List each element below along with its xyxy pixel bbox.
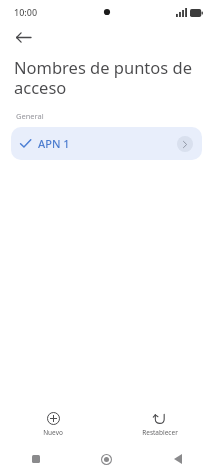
- staticText: 10:00: [14, 6, 38, 18]
- button[interactable]: Recents: [0, 444, 71, 474]
- staticText: General: [16, 111, 44, 121]
- button[interactable]: Back: [142, 444, 213, 474]
- button[interactable]: Home: [71, 444, 142, 474]
- staticText: APN 1: [38, 136, 70, 151]
- button[interactable]: Restablecer: [106, 409, 213, 440]
- staticText: Nuevo: [43, 428, 63, 437]
- button[interactable]: Back: [12, 26, 34, 48]
- staticText: Restablecer: [142, 428, 178, 437]
- staticText: Nombres de puntos de acceso: [14, 56, 197, 99]
- button[interactable]: Nuevo: [0, 409, 106, 440]
- button[interactable]: APN 1: [11, 127, 202, 160]
- button[interactable]: Edit APN 1: [177, 136, 193, 152]
